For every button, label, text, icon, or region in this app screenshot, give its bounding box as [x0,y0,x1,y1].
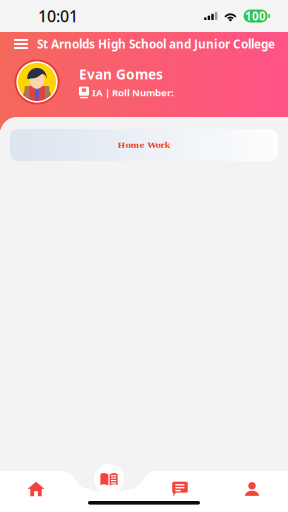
staticText: 100 [245,8,266,24]
button[interactable]: Menu [13,33,29,55]
staticText: Home Work [117,140,170,150]
button[interactable]: Home [8,476,64,502]
button[interactable]: Homework [81,466,137,492]
button[interactable]: Home Work [10,129,278,161]
button[interactable]: Profile [224,476,280,502]
button[interactable]: Messages [152,476,208,502]
staticText: IA | Roll Number: [92,86,174,99]
staticText: 10:01 [38,5,78,27]
staticText: Evan Gomes [79,65,163,83]
staticText: St Arnolds High School and Junior Colleg… [37,36,275,52]
